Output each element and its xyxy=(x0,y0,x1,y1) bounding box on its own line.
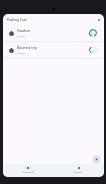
button[interactable]: Settings xyxy=(53,164,104,174)
staticText: 85% xyxy=(91,32,95,34)
button[interactable]: Vacation xyxy=(3,25,104,41)
staticText: 1% xyxy=(92,49,95,51)
staticText: Vacation xyxy=(17,29,31,33)
button[interactable] xyxy=(97,18,101,22)
staticText: 3 items xyxy=(17,34,26,37)
staticText: Business trip xyxy=(17,46,37,50)
staticText: Packing Lists xyxy=(7,18,27,22)
button[interactable]: Packing lists xyxy=(3,164,53,174)
staticText: Packing lists xyxy=(22,171,35,174)
staticText: Settings xyxy=(74,171,83,174)
button[interactable] xyxy=(93,156,100,163)
button[interactable]: Business trip xyxy=(3,42,104,58)
staticText: 3 items xyxy=(17,51,26,54)
